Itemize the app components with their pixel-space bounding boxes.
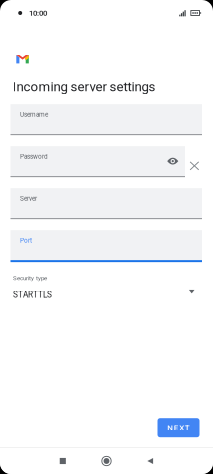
button[interactable]: Port <box>10 230 202 262</box>
staticText: STARTTLS <box>13 290 52 299</box>
button[interactable]: Password <box>10 146 185 177</box>
staticText: Security type <box>13 275 47 282</box>
staticText: Password <box>20 153 48 160</box>
button[interactable]: Security type <box>13 275 204 299</box>
staticText: Username <box>20 111 48 118</box>
button[interactable]: Recent apps <box>41 448 85 474</box>
staticText: 10:00 <box>29 8 47 17</box>
button[interactable]: Username <box>10 104 202 135</box>
staticText: Incoming server settings <box>12 79 155 94</box>
staticText: NEXT <box>167 423 190 432</box>
staticText: Server <box>20 195 37 202</box>
button[interactable]: Home <box>85 448 128 474</box>
button[interactable]: Clear password <box>185 146 203 177</box>
staticText: Port <box>20 237 32 244</box>
button[interactable]: Server <box>10 188 202 219</box>
button[interactable]: Back <box>128 448 172 474</box>
button[interactable]: NEXT <box>157 418 199 437</box>
